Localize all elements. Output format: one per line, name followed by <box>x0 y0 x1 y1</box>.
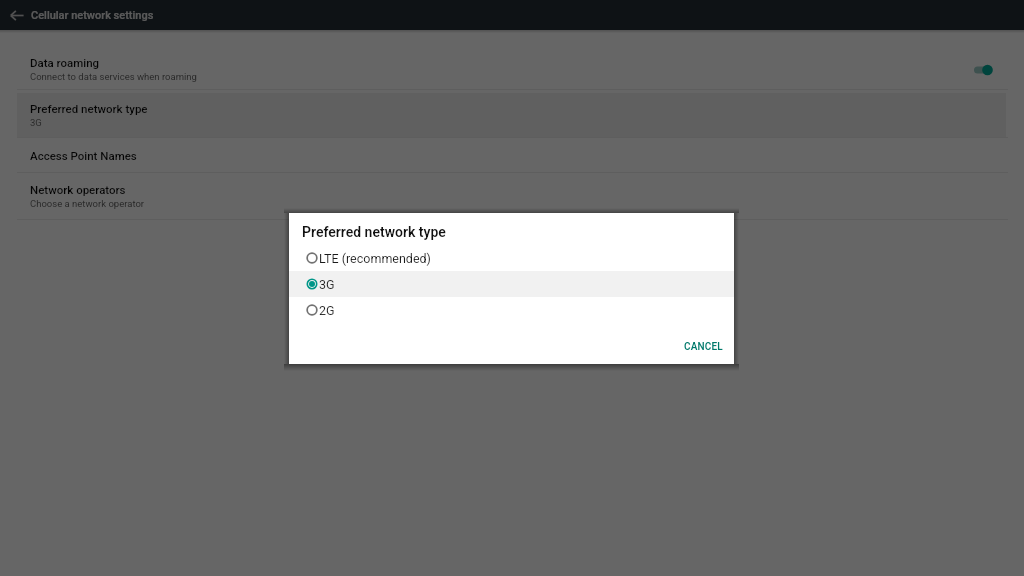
staticText: CANCEL <box>684 341 723 353</box>
button[interactable]: Navigate up <box>6 4 28 26</box>
button[interactable]: Data roaming <box>968 58 994 80</box>
button[interactable]: 3G <box>289 271 734 297</box>
staticText: 2G <box>319 303 335 318</box>
staticText: Cellular network settings <box>31 9 154 22</box>
staticText: Data roaming <box>30 56 100 69</box>
staticText: Access Point Names <box>30 149 137 162</box>
button[interactable]: Network operators <box>17 173 1006 219</box>
button[interactable]: LTE (recommended) <box>289 245 734 271</box>
staticText: Network operators <box>30 183 126 196</box>
staticText: 3G <box>30 117 42 128</box>
staticText: Choose a network operator <box>30 198 145 209</box>
button[interactable]: Access Point Names <box>17 138 1006 172</box>
staticText: LTE (recommended) <box>319 251 431 266</box>
staticText: Preferred network type <box>302 224 446 240</box>
staticText: Preferred network type <box>30 102 148 115</box>
button[interactable]: Preferred network type <box>17 93 1006 137</box>
button[interactable]: CANCEL <box>675 336 732 358</box>
staticText: 3G <box>319 277 335 292</box>
staticText: Connect to data services when roaming <box>30 71 197 82</box>
button[interactable]: Data roaming <box>17 48 1006 89</box>
button[interactable]: 2G <box>289 297 734 323</box>
